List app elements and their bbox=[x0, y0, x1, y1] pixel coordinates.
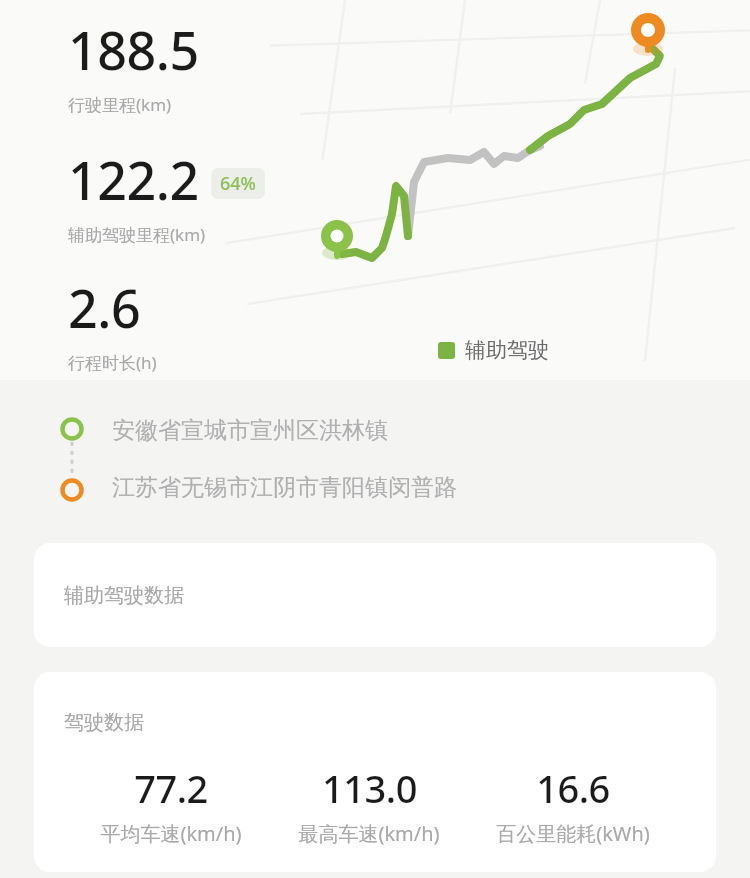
staticText: 百公里能耗(kWh) bbox=[496, 820, 650, 847]
button[interactable]: 77.2 bbox=[100, 762, 242, 847]
staticText: 驾驶数据 bbox=[64, 710, 144, 735]
staticText: 江苏省无锡市江阴市青阳镇闵普路 bbox=[112, 473, 457, 502]
button[interactable]: 辅助驾驶 bbox=[438, 337, 549, 363]
staticText: 平均车速(km/h) bbox=[100, 820, 242, 847]
button[interactable]: 64% bbox=[211, 168, 265, 199]
staticText: 行驶里程(km) bbox=[68, 93, 172, 116]
staticText: 辅助驾驶里程(km) bbox=[68, 223, 206, 246]
staticText: 122.2 bbox=[68, 144, 199, 215]
staticText: 最高车速(km/h) bbox=[298, 820, 440, 847]
staticText: 安徽省宣城市宣州区洪林镇 bbox=[112, 416, 388, 445]
staticText: 188.5 bbox=[68, 14, 199, 85]
staticText: 64% bbox=[220, 171, 256, 196]
staticText: 2.6 bbox=[68, 272, 141, 343]
staticText: 辅助驾驶 bbox=[465, 337, 549, 363]
staticText: 77.2 bbox=[134, 762, 208, 814]
staticText: 16.6 bbox=[536, 762, 610, 814]
button[interactable]: 辅助驾驶数据 bbox=[34, 543, 716, 647]
button[interactable]: 16.6 bbox=[496, 762, 650, 847]
button[interactable]: Route map bbox=[0, 0, 750, 380]
button[interactable]: 驾驶数据 bbox=[34, 672, 716, 872]
staticText: 行程时长(h) bbox=[68, 351, 157, 374]
button[interactable]: 113.0 bbox=[298, 762, 440, 847]
button[interactable]: 安徽省宣城市宣州区洪林镇 bbox=[0, 402, 750, 510]
staticText: 辅助驾驶数据 bbox=[64, 583, 184, 608]
staticText: 113.0 bbox=[322, 762, 417, 814]
